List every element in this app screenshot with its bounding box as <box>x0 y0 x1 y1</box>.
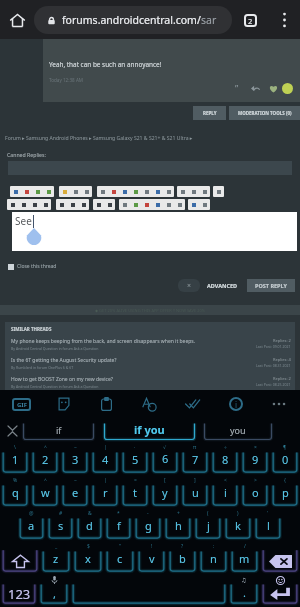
button[interactable]: √ <box>152 443 178 476</box>
button[interactable]: if you <box>103 418 196 443</box>
button[interactable]: Home <box>0 3 34 37</box>
button[interactable]: More options <box>268 4 300 36</box>
button[interactable]: if <box>22 418 95 443</box>
button[interactable]: : <box>200 542 227 575</box>
button[interactable]: / <box>231 542 258 575</box>
button[interactable]: Translate <box>128 390 171 418</box>
button[interactable]: Format <box>174 199 185 210</box>
button[interactable]: REPLY <box>193 106 226 120</box>
button[interactable]: Dismiss <box>178 279 200 292</box>
button[interactable]: Format <box>163 186 174 197</box>
button[interactable]: Clipboard <box>85 390 128 418</box>
button[interactable]: Format <box>32 186 43 197</box>
button[interactable]: ^ <box>32 476 58 509</box>
button[interactable]: ADVANCED <box>207 279 238 292</box>
button[interactable]: MODERATION TOOLS (0) <box>229 106 300 120</box>
button[interactable]: × <box>242 443 268 476</box>
button[interactable]: _ <box>42 542 70 575</box>
button[interactable]: Format <box>70 186 81 197</box>
button[interactable]: Symbols <box>2 575 36 607</box>
button[interactable]: Format <box>78 199 89 210</box>
button[interactable]: Format <box>199 199 210 210</box>
button[interactable]: π <box>182 443 208 476</box>
button[interactable]: Backspace <box>262 542 298 575</box>
button[interactable]: @ <box>19 509 44 542</box>
button[interactable]: \ <box>2 443 28 476</box>
button[interactable]: ÷ <box>212 443 238 476</box>
button[interactable]: $ <box>74 542 102 575</box>
button[interactable]: # <box>48 509 73 542</box>
button[interactable]: you <box>203 418 273 443</box>
button[interactable]: Info <box>214 390 257 418</box>
button[interactable]: = <box>122 476 148 509</box>
button[interactable]: ! <box>138 542 165 575</box>
button[interactable]: ) <box>225 509 251 542</box>
button[interactable]: Format <box>108 186 119 197</box>
button[interactable]: Format <box>130 186 141 197</box>
button[interactable]: Format <box>141 199 152 210</box>
button[interactable]: Hide suggestions <box>0 418 24 443</box>
button[interactable]: Format <box>10 186 21 197</box>
button[interactable]: + <box>165 509 191 542</box>
button[interactable]: Reaction <box>282 83 293 94</box>
button[interactable]: Format <box>213 186 224 197</box>
button[interactable]: - <box>135 509 161 542</box>
button[interactable]: Enter <box>262 575 298 607</box>
button[interactable]: Format <box>67 199 78 210</box>
button[interactable]: · <box>122 443 148 476</box>
button[interactable]: More <box>257 390 300 418</box>
button[interactable]: ^ <box>32 443 58 476</box>
button[interactable]: ? <box>169 542 196 575</box>
button[interactable]: [ <box>152 476 178 509</box>
button[interactable]: Comma <box>40 575 68 607</box>
button[interactable]: Period <box>230 575 258 607</box>
button[interactable]: % <box>2 476 28 509</box>
button[interactable]: Format <box>163 199 174 210</box>
button[interactable]: Format <box>177 186 188 197</box>
button[interactable]: Format <box>152 199 163 210</box>
button[interactable]: { <box>272 476 298 509</box>
button[interactable]: Format <box>56 199 67 210</box>
button[interactable]: My phone keeps beeping from the back, an… <box>11 336 291 355</box>
button[interactable]: ] <box>182 476 208 509</box>
button[interactable]: forums.androidcentral.com/ <box>34 6 232 34</box>
button[interactable]: Like <box>267 82 279 94</box>
button[interactable]: ( <box>195 509 221 542</box>
button[interactable]: Format <box>93 199 104 210</box>
button[interactable]: Close this thread <box>8 263 57 270</box>
button[interactable]: Format <box>152 186 163 197</box>
button[interactable]: Format <box>130 199 141 210</box>
button[interactable]: Stickers <box>42 390 85 418</box>
button[interactable]: Format <box>40 199 51 210</box>
button[interactable]: Format <box>43 186 54 197</box>
button[interactable]: " <box>106 542 134 575</box>
button[interactable]: ~ <box>62 443 88 476</box>
button[interactable]: | <box>92 476 118 509</box>
button[interactable]: Quote <box>231 82 243 94</box>
button[interactable]: Format <box>119 199 130 210</box>
button[interactable]: Format <box>199 186 210 197</box>
button[interactable]: Format <box>119 186 130 197</box>
button[interactable]: ~ <box>62 476 88 509</box>
button[interactable]: ' <box>255 509 281 542</box>
button[interactable]: POST REPLY <box>247 279 295 292</box>
button[interactable]: Format <box>188 199 199 210</box>
button[interactable]: * <box>106 509 131 542</box>
button[interactable]: Shift <box>2 542 38 575</box>
button[interactable]: Format <box>97 186 108 197</box>
button[interactable]: & <box>77 509 102 542</box>
button[interactable]: < <box>212 476 238 509</box>
button[interactable]: ¶ <box>272 443 298 476</box>
button[interactable]: Reply <box>249 82 261 94</box>
button[interactable]: > <box>242 476 268 509</box>
button[interactable]: GIF <box>0 390 42 418</box>
button[interactable]: Format <box>188 186 199 197</box>
button[interactable]: Format <box>18 199 29 210</box>
button[interactable]: Format <box>7 199 18 210</box>
button[interactable]: Grammar check <box>171 390 214 418</box>
button[interactable]: Format <box>21 186 32 197</box>
button[interactable]: How to get BOOST Zone on my new device? <box>11 374 291 390</box>
button[interactable]: Space <box>72 575 226 607</box>
